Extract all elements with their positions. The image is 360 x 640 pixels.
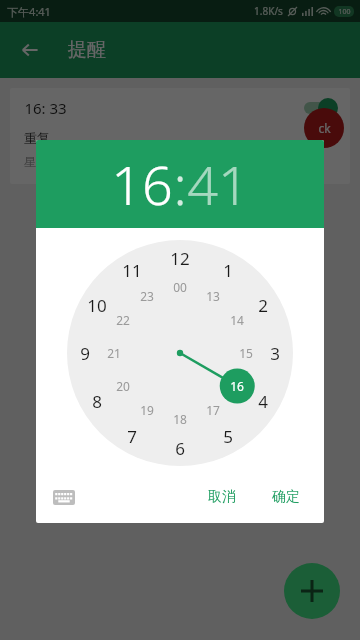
staticText: 17 bbox=[206, 402, 220, 418]
staticText: 16 bbox=[111, 147, 173, 221]
button[interactable]: Back bbox=[10, 30, 50, 70]
staticText: 下午4:41 bbox=[7, 4, 51, 19]
staticText: 10 bbox=[87, 294, 107, 317]
staticText: 7 bbox=[127, 425, 137, 448]
staticText: 14 bbox=[230, 312, 244, 328]
staticText: 15 bbox=[239, 345, 253, 361]
staticText: 星期一 bbox=[24, 154, 60, 169]
staticText: 9 bbox=[80, 342, 90, 365]
staticText: 00 bbox=[173, 279, 187, 295]
button[interactable]: 41 bbox=[187, 147, 249, 221]
staticText: 确定 bbox=[272, 488, 300, 506]
staticText: 8 bbox=[92, 390, 102, 413]
staticText: 重复 bbox=[24, 130, 50, 146]
button[interactable]: Clock face bbox=[67, 240, 293, 466]
staticText: ck bbox=[318, 120, 331, 136]
staticText: 5 bbox=[223, 425, 233, 448]
staticText: 6 bbox=[175, 437, 185, 460]
staticText: 12 bbox=[170, 247, 190, 270]
staticText: 19 bbox=[140, 402, 154, 418]
staticText: 41 bbox=[187, 147, 249, 221]
staticText: 13 bbox=[206, 288, 220, 304]
button[interactable]: 16: 33 bbox=[10, 88, 350, 184]
button[interactable]: Toggle alarm bbox=[304, 102, 334, 114]
staticText: 1.8K/s bbox=[254, 4, 283, 18]
button[interactable]: Add reminder bbox=[284, 563, 340, 619]
staticText: 提醒 bbox=[68, 38, 106, 62]
staticText: 20 bbox=[116, 378, 130, 394]
staticText: 取消 bbox=[208, 488, 236, 506]
staticText: 23 bbox=[140, 288, 154, 304]
staticText: 16: 33 bbox=[24, 98, 67, 118]
staticText: 11 bbox=[122, 259, 142, 282]
staticText: 16 bbox=[230, 378, 244, 394]
staticText: 1 bbox=[223, 259, 233, 282]
staticText: 100 bbox=[338, 7, 351, 17]
staticText: 2 bbox=[258, 294, 268, 317]
staticText: : bbox=[173, 147, 187, 221]
button[interactable]: Switch to keyboard input bbox=[46, 479, 82, 515]
button[interactable]: 取消 bbox=[198, 482, 246, 512]
staticText: 3 bbox=[270, 342, 280, 365]
staticText: 4 bbox=[258, 390, 268, 413]
staticText: 21 bbox=[107, 345, 121, 361]
button[interactable]: 16 bbox=[111, 147, 173, 221]
button[interactable]: 确定 bbox=[262, 482, 310, 512]
staticText: 22 bbox=[116, 312, 130, 328]
staticText: 18 bbox=[173, 411, 187, 427]
